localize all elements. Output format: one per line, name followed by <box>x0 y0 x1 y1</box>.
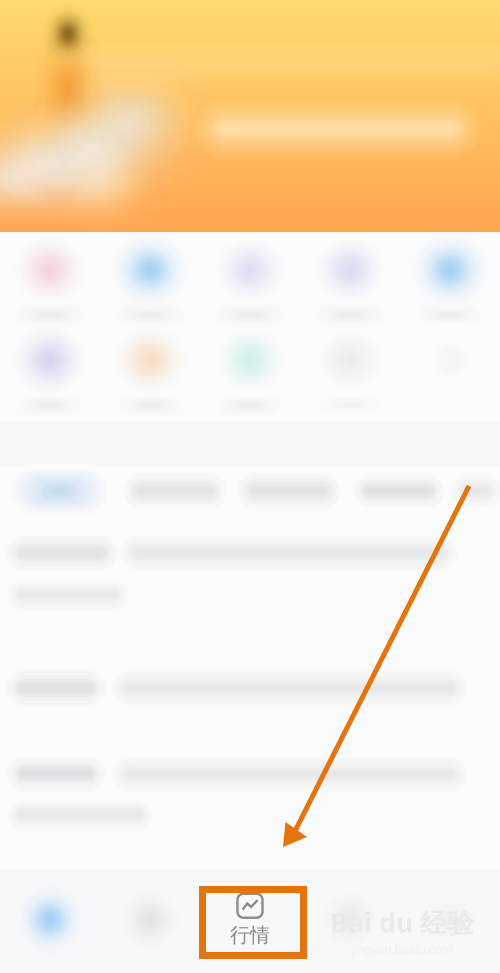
button[interactable]: 交易 <box>100 870 200 973</box>
button[interactable]: 更多 <box>452 466 500 516</box>
button[interactable]: Shortcut <box>200 332 300 422</box>
button[interactable]: Shortcut <box>300 332 400 422</box>
button[interactable]: 自选 <box>0 466 118 516</box>
button[interactable]: Shortcut <box>0 332 100 422</box>
button[interactable]: News item 2 <box>0 656 500 720</box>
button[interactable]: 港股 <box>232 466 346 516</box>
button[interactable]: 美股 <box>346 466 452 516</box>
button[interactable]: Shortcut <box>100 242 200 332</box>
button[interactable]: 沪深 <box>118 466 232 516</box>
staticText: Bai du 经验 <box>330 904 474 940</box>
button[interactable]: 我的 <box>400 870 500 973</box>
button[interactable]: Shortcut <box>100 332 200 422</box>
button[interactable]: 首页 <box>0 870 100 973</box>
button[interactable]: Shortcut <box>400 242 500 332</box>
staticText: 行情 <box>230 923 270 947</box>
button[interactable]: 行情 <box>200 870 300 973</box>
button[interactable]: Shortcut <box>300 242 400 332</box>
button[interactable]: Shortcut <box>0 242 100 332</box>
button[interactable]: News item 3 <box>0 750 500 838</box>
button[interactable]: 理财 <box>300 870 400 973</box>
button[interactable]: Shortcut <box>200 242 300 332</box>
button[interactable]: News item 1 <box>0 526 500 622</box>
